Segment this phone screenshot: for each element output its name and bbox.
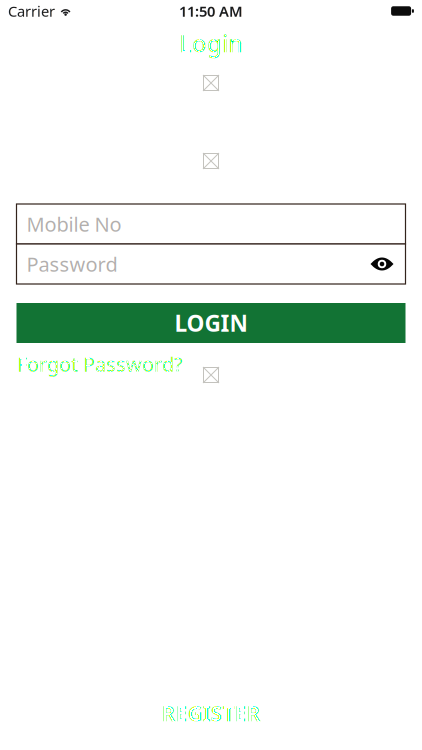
button[interactable]: Close xyxy=(7,20,51,64)
staticText: Carrier xyxy=(8,1,55,21)
image xyxy=(203,153,219,169)
image xyxy=(203,367,219,383)
image xyxy=(203,75,219,91)
button[interactable]: Forgot Password? xyxy=(17,353,217,375)
staticText: Login xyxy=(179,27,243,59)
staticText: 11:50 AM xyxy=(179,1,243,21)
staticText: Password xyxy=(26,251,117,277)
staticText: Forgot Password? xyxy=(17,351,183,377)
staticText: Mobile No xyxy=(26,211,121,237)
staticText: REGISTER xyxy=(161,699,260,727)
staticText: LOGIN xyxy=(174,308,247,338)
button[interactable]: LOGIN xyxy=(16,303,405,343)
button[interactable]: REGISTER xyxy=(19,694,403,732)
button[interactable]: Show password xyxy=(368,256,395,271)
